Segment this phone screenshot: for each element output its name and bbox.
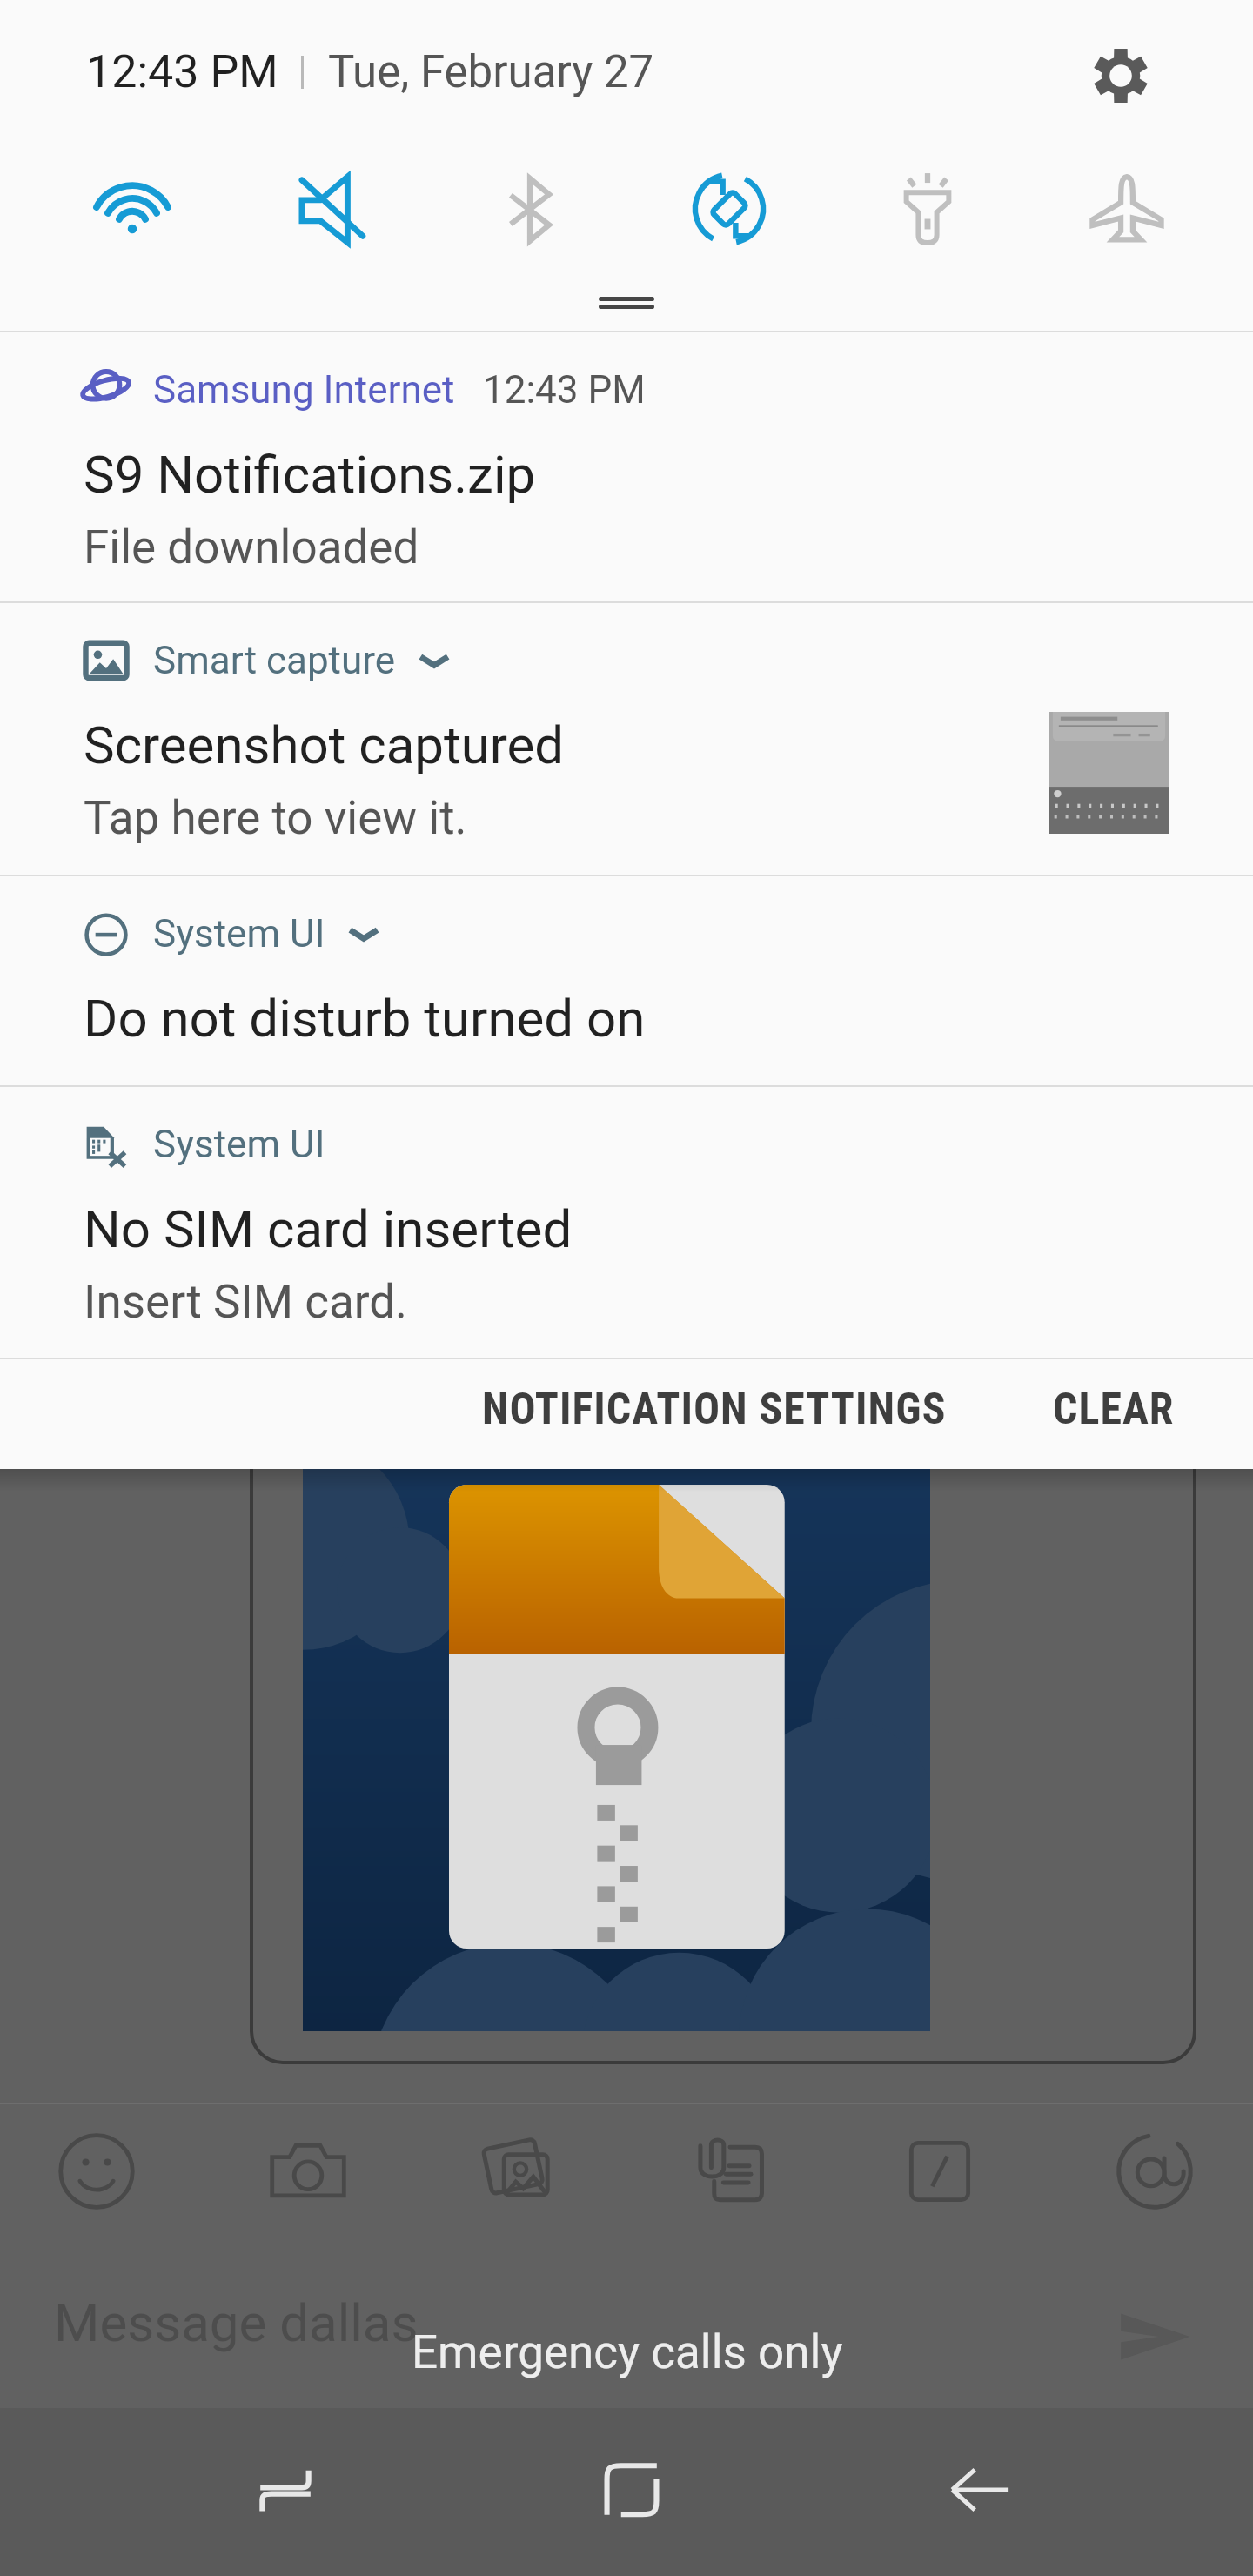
button[interactable]: Mention xyxy=(1092,2109,1217,2234)
staticText: Insert SIM card. xyxy=(84,1275,408,1329)
button[interactable]: Home xyxy=(569,2427,694,2553)
button[interactable]: Camera xyxy=(245,2109,371,2234)
staticText: Message dallas xyxy=(54,2292,419,2353)
button[interactable]: Flashlight xyxy=(854,136,1001,282)
button[interactable]: Bluetooth xyxy=(457,136,603,282)
button[interactable]: Settings xyxy=(1083,38,1158,113)
button[interactable]: NOTIFICATION SETTINGS xyxy=(452,1357,976,1461)
staticText: File downloaded xyxy=(84,520,419,574)
staticText: System UI xyxy=(153,911,325,956)
button[interactable]: CLEAR xyxy=(1023,1357,1204,1461)
staticText: No SIM card inserted xyxy=(84,1198,573,1259)
button[interactable]: Samsung Internet xyxy=(0,332,1253,603)
button[interactable]: Contact xyxy=(667,2109,793,2234)
staticText: Do not disturb turned on xyxy=(84,988,646,1049)
button[interactable]: Recents xyxy=(223,2427,348,2553)
button[interactable]: Template xyxy=(877,2109,1002,2234)
button[interactable]: Sound off xyxy=(258,136,405,282)
button[interactable]: Airplane mode xyxy=(1054,136,1200,282)
staticText: S9 Notifications.zip xyxy=(84,444,536,505)
staticText: Screenshot captured xyxy=(84,714,565,775)
staticText: NOTIFICATION SETTINGS xyxy=(482,1384,947,1435)
staticText: Samsung Internet xyxy=(153,367,455,413)
staticText: 12:43 PM xyxy=(86,45,278,98)
button[interactable]: Auto rotate xyxy=(656,136,802,282)
staticText: 12:43 PM xyxy=(483,367,646,413)
staticText: CLEAR xyxy=(1053,1384,1175,1435)
button[interactable]: System UI xyxy=(0,876,1253,1087)
staticText: System UI xyxy=(153,1122,325,1167)
staticText: Tue, February 27 xyxy=(328,46,654,98)
staticText: Smart capture xyxy=(153,638,396,683)
button[interactable]: Emoji xyxy=(34,2109,159,2234)
button[interactable]: Smart capture xyxy=(0,603,1253,876)
button[interactable]: Gallery xyxy=(458,2109,583,2234)
button[interactable]: System UI xyxy=(0,1087,1253,1359)
staticText: Tap here to view it. xyxy=(84,791,467,845)
staticText: Emergency calls only xyxy=(412,2325,843,2379)
button[interactable]: Back xyxy=(917,2427,1042,2553)
button[interactable]: Wi-Fi xyxy=(59,136,205,282)
